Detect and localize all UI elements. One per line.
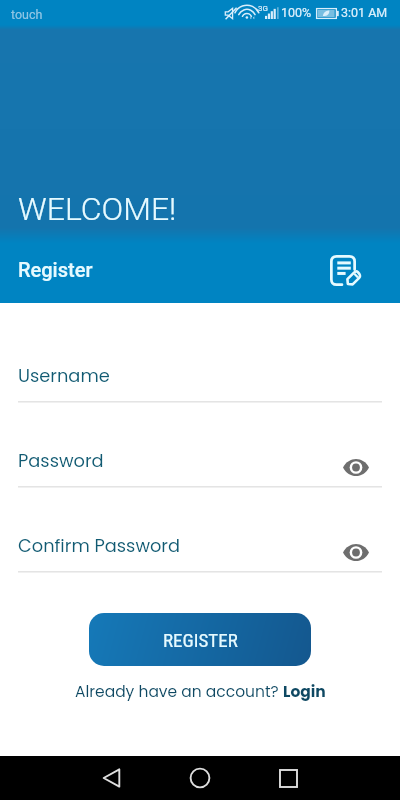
staticText: 3G — [258, 4, 268, 13]
staticText: Login — [283, 681, 326, 703]
button[interactable]: Toggle password visibility — [341, 447, 371, 473]
button[interactable]: Already have an account? — [0, 679, 400, 705]
staticText: REGISTER — [163, 629, 238, 651]
button[interactable]: Back — [79, 756, 143, 800]
staticText: Username — [18, 363, 110, 388]
button[interactable]: Toggle password visibility — [341, 532, 371, 558]
staticText: WELCOME! — [18, 190, 177, 228]
staticText: Confirm Password — [18, 533, 181, 558]
button[interactable]: Edit registration form — [321, 247, 365, 291]
button[interactable]: Home — [168, 756, 232, 800]
button[interactable]: REGISTER — [89, 613, 311, 666]
button[interactable]: Username — [18, 362, 371, 388]
button[interactable]: Password — [18, 447, 371, 473]
staticText: Register — [18, 258, 93, 281]
staticText: 100% — [281, 5, 312, 20]
staticText: touch — [11, 7, 43, 22]
button[interactable]: Recent apps — [256, 756, 320, 800]
staticText: Already have an account? — [75, 681, 283, 703]
button[interactable]: Confirm Password — [18, 532, 371, 558]
staticText: Password — [18, 448, 104, 473]
staticText: 3:01 AM — [341, 5, 388, 20]
